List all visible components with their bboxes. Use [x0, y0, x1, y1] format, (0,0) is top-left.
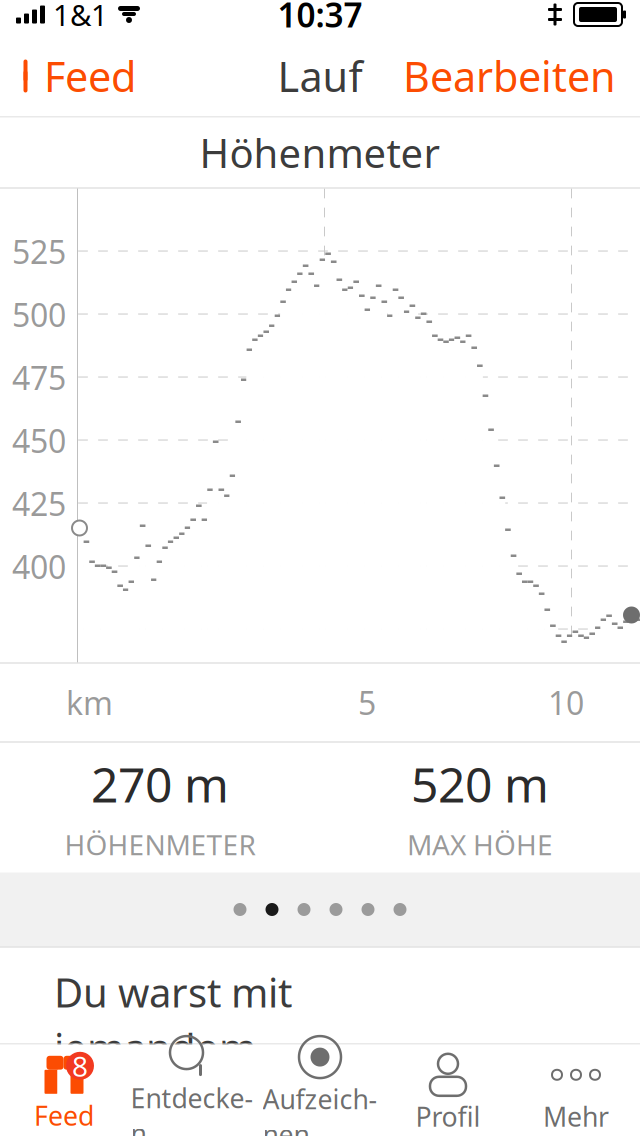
staticText: 270 m	[91, 752, 229, 816]
staticText: Mehr	[543, 1099, 609, 1134]
staticText: Feed	[44, 49, 136, 103]
staticText: MAX HÖHE	[407, 826, 553, 863]
staticText: jemandem	[54, 1021, 256, 1074]
staticText: Aufzeichnen	[262, 1081, 377, 1136]
staticText: 500	[12, 293, 66, 336]
staticText: Du warst mit	[54, 965, 292, 1019]
button[interactable]: Mehr	[512, 1044, 640, 1136]
staticText: Höhenmeter	[199, 126, 440, 179]
button[interactable]: Entdecken	[128, 1044, 256, 1136]
staticText: 1&1	[53, 0, 108, 34]
staticText: 10:37	[277, 0, 362, 37]
staticText: 425	[12, 482, 66, 525]
staticText: Bearbeiten	[403, 49, 616, 103]
button[interactable]: Profil	[384, 1044, 512, 1136]
staticText: 520 m	[411, 752, 549, 816]
staticText: Profil	[415, 1099, 480, 1134]
staticText: Entdecken	[130, 1080, 253, 1136]
staticText: HÖHENMETER	[64, 826, 255, 863]
staticText: 400	[12, 545, 66, 588]
staticText: 475	[12, 356, 66, 399]
button[interactable]: Bearbeiten	[403, 39, 640, 113]
staticText: km	[66, 681, 113, 724]
staticText: 450	[12, 419, 66, 462]
staticText: Lauf	[277, 49, 362, 103]
staticText: 8	[72, 1047, 88, 1084]
button[interactable]: Aufzeichnen	[256, 1044, 384, 1136]
staticText: Feed	[34, 1098, 94, 1133]
button[interactable]: Feed	[0, 39, 136, 113]
staticText: 5	[358, 681, 376, 724]
staticText: 10	[548, 681, 584, 724]
button[interactable]: 8	[0, 1044, 128, 1136]
staticText: 525	[12, 230, 66, 273]
